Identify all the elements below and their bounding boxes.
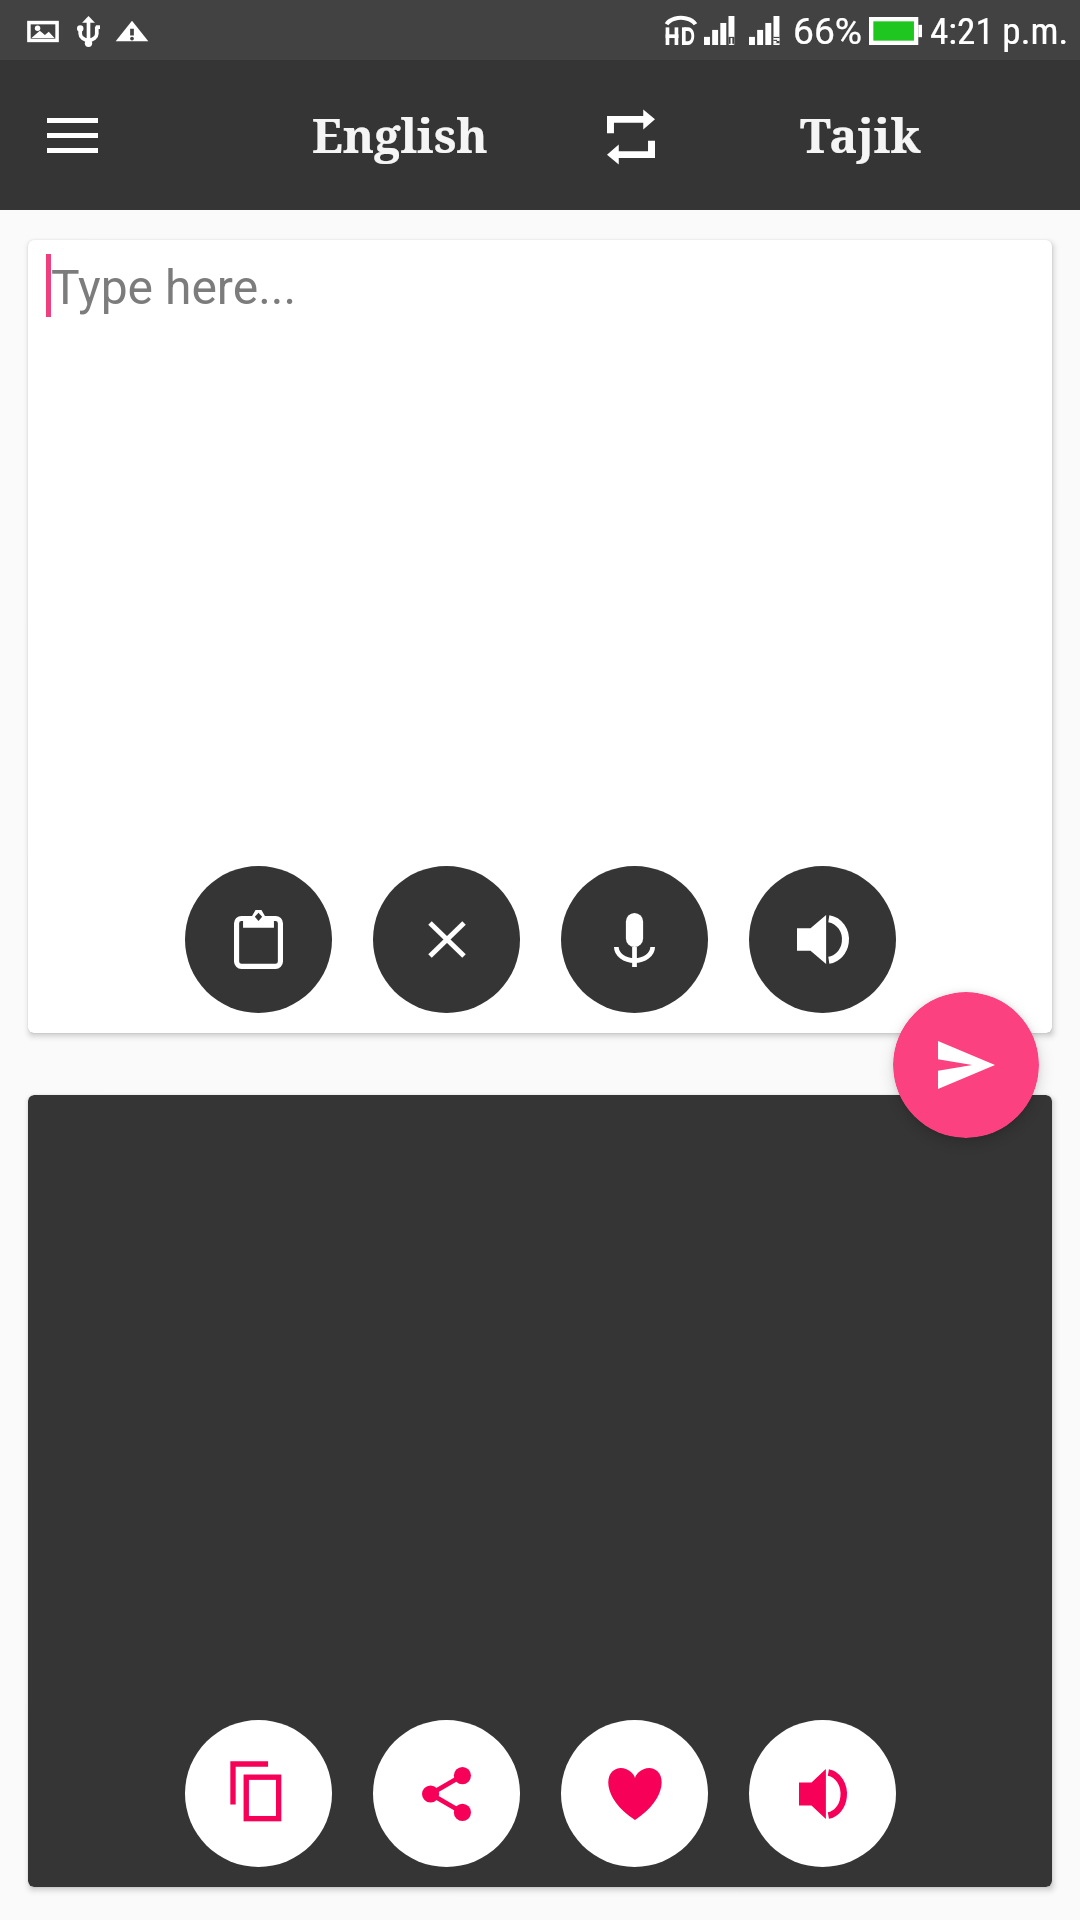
staticText: Type here... <box>51 259 297 315</box>
staticText: 4:21 p.m. <box>930 9 1069 53</box>
button[interactable]: Source language English <box>280 60 520 210</box>
button[interactable]: Open navigation menu <box>24 60 120 210</box>
staticText: English <box>312 103 488 167</box>
button[interactable]: Translate <box>893 992 1039 1138</box>
button[interactable]: Swap languages <box>583 60 679 210</box>
button[interactable]: Clear text <box>373 866 520 1013</box>
button[interactable]: Speak translation <box>749 1720 896 1867</box>
staticText: Tajik <box>800 103 921 167</box>
button[interactable]: Paste <box>185 866 332 1013</box>
button[interactable]: Voice input <box>561 866 708 1013</box>
button[interactable]: Speak text <box>749 866 896 1013</box>
button[interactable]: Target language Tajik <box>770 60 950 210</box>
button[interactable]: Copy translation <box>185 1720 332 1867</box>
button[interactable]: Add to favourites <box>561 1720 708 1867</box>
staticText: 66% <box>793 9 863 53</box>
button[interactable]: Share <box>373 1720 520 1867</box>
